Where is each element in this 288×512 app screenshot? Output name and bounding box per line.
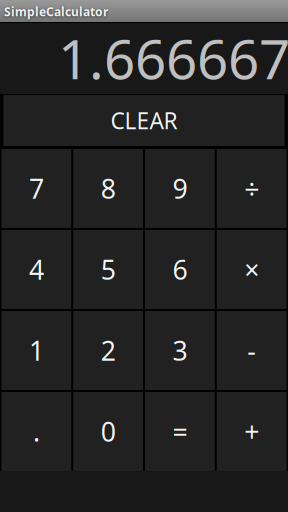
- button[interactable]: ÷: [217, 149, 287, 228]
- button[interactable]: 6: [145, 230, 215, 309]
- staticText: =: [172, 414, 187, 449]
- staticText: 5: [101, 252, 116, 287]
- button[interactable]: 9: [145, 149, 215, 228]
- staticText: 7: [29, 171, 44, 206]
- button[interactable]: 1: [1, 311, 71, 390]
- button[interactable]: 5: [73, 230, 143, 309]
- button[interactable]: 0: [73, 392, 143, 471]
- staticText: CLEAR: [110, 105, 177, 135]
- staticText: 8: [101, 171, 116, 206]
- staticText: -: [247, 333, 256, 368]
- staticText: 6: [172, 252, 187, 287]
- button[interactable]: -: [217, 311, 287, 390]
- staticText: ×: [244, 252, 259, 287]
- button[interactable]: 2: [73, 311, 143, 390]
- staticText: 1.666667: [58, 22, 288, 94]
- staticText: 3: [172, 333, 187, 368]
- staticText: 2: [101, 333, 116, 368]
- staticText: 9: [172, 171, 187, 206]
- button[interactable]: .: [1, 392, 71, 471]
- staticText: .: [33, 414, 40, 449]
- button[interactable]: 4: [1, 230, 71, 309]
- staticText: +: [244, 414, 259, 449]
- button[interactable]: ×: [217, 230, 287, 309]
- staticText: SimpleCalculator: [4, 3, 108, 19]
- staticText: 1: [29, 333, 44, 368]
- button[interactable]: 8: [73, 149, 143, 228]
- button[interactable]: 7: [1, 149, 71, 228]
- staticText: 0: [101, 414, 116, 449]
- staticText: 4: [29, 252, 44, 287]
- button[interactable]: 3: [145, 311, 215, 390]
- button[interactable]: =: [145, 392, 215, 471]
- button[interactable]: CLEAR: [3, 95, 284, 146]
- staticText: ÷: [244, 171, 259, 206]
- button[interactable]: +: [217, 392, 287, 471]
